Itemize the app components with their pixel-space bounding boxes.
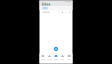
staticText: Files xyxy=(61,59,64,61)
button[interactable]: Home xyxy=(39,53,46,63)
staticText: Inbox xyxy=(42,3,50,6)
button[interactable]: More xyxy=(66,53,72,63)
button[interactable]: Teams xyxy=(46,53,53,63)
staticText: Chat xyxy=(54,59,57,61)
button[interactable]: Files xyxy=(59,53,66,63)
staticText: Teams xyxy=(47,59,52,61)
staticText: Yesterday xyxy=(42,11,50,13)
button[interactable]: Chat xyxy=(53,53,59,63)
button[interactable]: Compose xyxy=(53,47,59,51)
staticText: Home xyxy=(41,59,45,61)
staticText: More xyxy=(67,59,71,61)
